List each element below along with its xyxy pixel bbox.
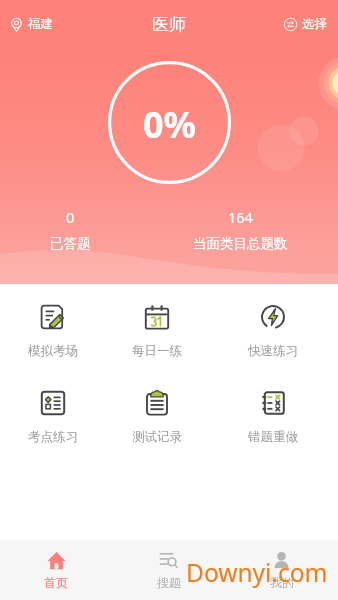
button[interactable]: 错题重做	[228, 380, 318, 445]
staticText: 164	[228, 207, 253, 227]
staticText: 已答题	[50, 235, 91, 252]
button[interactable]: 搜题	[112, 540, 225, 600]
staticText: 每日一练	[132, 343, 182, 359]
button[interactable]: 首页	[0, 540, 112, 600]
staticText: 快速练习	[248, 343, 298, 359]
staticText: 搜题	[157, 575, 181, 590]
staticText: 0	[66, 207, 75, 227]
staticText: 错题重做	[248, 429, 298, 445]
staticText: 选择	[302, 16, 327, 32]
button[interactable]: 模拟考场	[8, 294, 98, 359]
staticText: 首页	[44, 575, 68, 590]
button[interactable]: 快速练习	[228, 294, 318, 359]
staticText: 福建	[28, 16, 53, 32]
staticText: Downyi.com	[186, 556, 328, 589]
staticText: 测试记录	[132, 429, 182, 445]
staticText: 模拟考场	[28, 343, 78, 359]
button[interactable]: 福建	[4, 11, 58, 37]
button[interactable]: 测试记录	[112, 380, 202, 445]
staticText: 当面类目总题数	[193, 235, 288, 252]
staticText: 0%	[143, 100, 197, 149]
button[interactable]: 每日一练	[112, 294, 202, 359]
staticText: 我的	[270, 575, 294, 590]
button[interactable]: 考点练习	[8, 380, 98, 445]
button[interactable]: 我的	[225, 540, 338, 600]
staticText: 医师	[152, 14, 186, 35]
staticText: 考点练习	[28, 429, 78, 445]
button[interactable]: 选择	[278, 11, 332, 37]
